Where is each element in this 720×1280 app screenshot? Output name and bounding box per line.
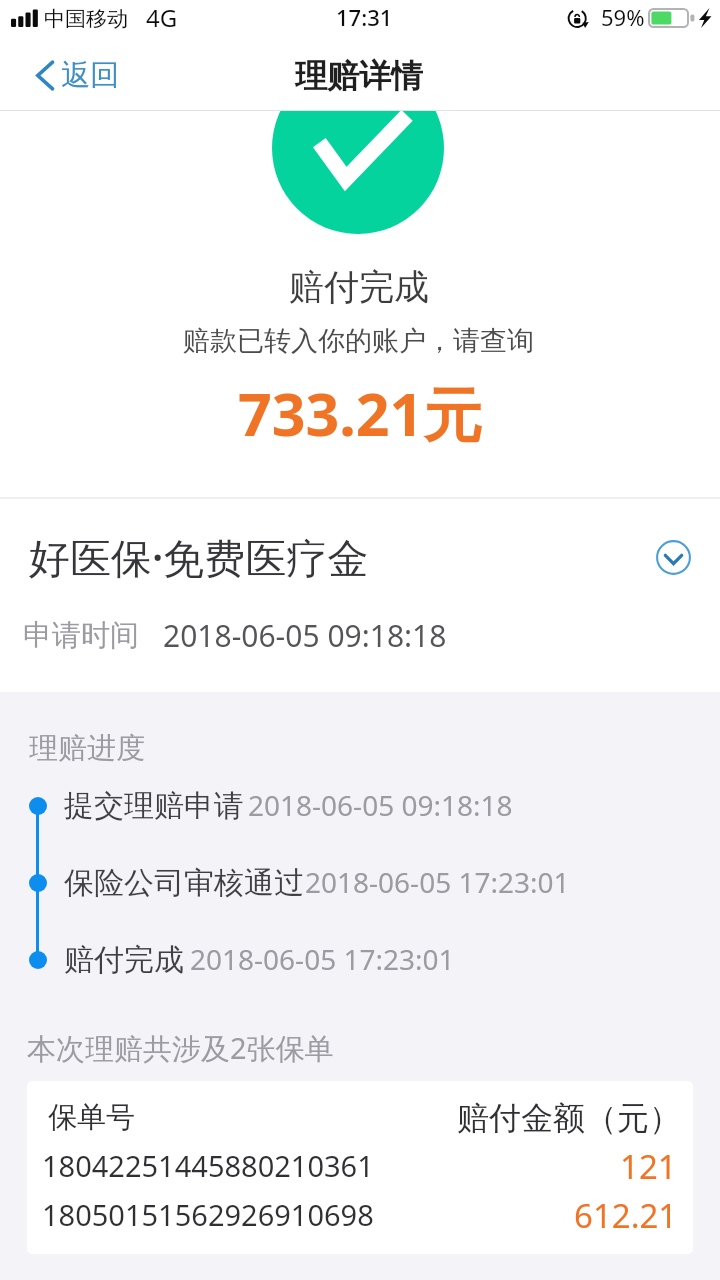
- staticText: 保险公司审核通过: [64, 864, 304, 902]
- staticText: 提交理赔申请: [64, 787, 244, 825]
- staticText: 2018-06-05 17:23:01: [190, 940, 455, 978]
- staticText: 本次理赔共涉及2张保单: [27, 1028, 334, 1068]
- button[interactable]: 提交理赔申请: [64, 785, 244, 827]
- staticText: 好医保·免费医疗金: [29, 529, 369, 585]
- staticText: 理赔进度: [29, 730, 145, 767]
- button[interactable]: 展开保单详情: [640, 532, 707, 582]
- staticText: 赔付完成: [289, 265, 429, 309]
- staticText: 赔款已转入你的账户，请查询: [183, 324, 534, 358]
- button[interactable]: 保险公司审核通过: [64, 862, 304, 904]
- staticText: 4G: [146, 1, 178, 34]
- staticText: 121: [620, 1144, 677, 1189]
- staticText: 2018-06-05 09:18:18: [163, 615, 447, 656]
- button[interactable]: 赔付完成: [64, 939, 184, 981]
- staticText: 赔付完成: [64, 941, 184, 979]
- staticText: 申请时间: [23, 617, 139, 654]
- staticText: 赔付金额（元）: [457, 1098, 681, 1138]
- staticText: 返回: [61, 57, 119, 94]
- staticText: 17:31: [336, 2, 393, 32]
- staticText: 733.21元: [238, 373, 483, 454]
- staticText: 612.21: [574, 1193, 678, 1238]
- staticText: 2018-06-05 17:23:01: [305, 863, 570, 901]
- staticText: 59%: [601, 2, 645, 32]
- button[interactable]: 返回: [0, 40, 135, 110]
- staticText: 中国移动: [44, 6, 128, 32]
- staticText: 理赔详情: [295, 56, 423, 96]
- staticText: 2018-06-05 09:18:18: [248, 786, 513, 824]
- staticText: 保单号: [48, 1099, 135, 1136]
- staticText: 18050151562926910698: [42, 1195, 374, 1234]
- staticText: 18042251445880210361: [42, 1146, 374, 1185]
